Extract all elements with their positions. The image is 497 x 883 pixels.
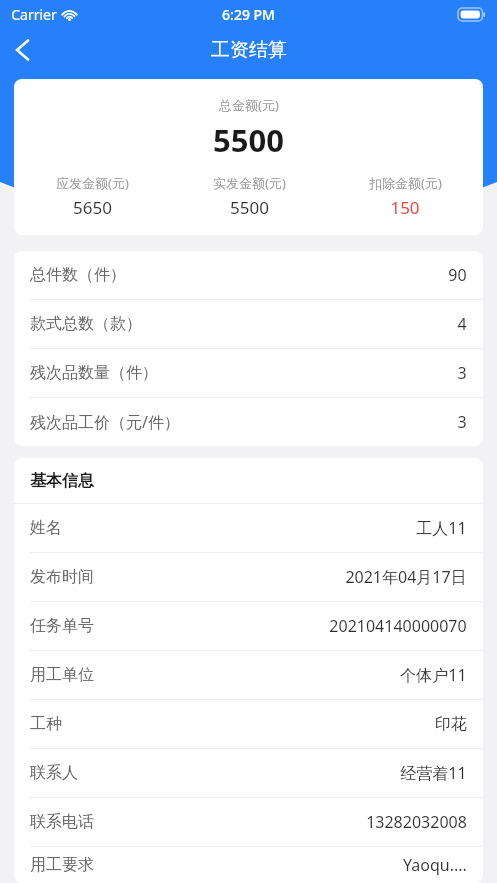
staticText: 用工单位 — [30, 665, 94, 685]
button[interactable]: Back — [0, 28, 46, 72]
staticText: 202104140000070 — [329, 615, 467, 637]
staticText: 实发金额(元) — [213, 174, 286, 192]
staticText: 款式总数（款） — [30, 314, 142, 334]
staticText: 扣除金额(元) — [369, 174, 442, 192]
staticText: 姓名 — [30, 518, 62, 538]
staticText: Yaoqu.... — [403, 854, 467, 876]
staticText: 个体户11 — [400, 664, 467, 686]
staticText: 用工要求 — [30, 855, 94, 875]
button[interactable]: 总件数（件） — [14, 251, 483, 299]
button[interactable]: 残次品数量（件） — [14, 349, 483, 397]
staticText: 工资结算 — [211, 38, 287, 62]
button[interactable]: 联系电话 — [14, 798, 483, 846]
staticText: 任务单号 — [30, 616, 94, 636]
staticText: 3 — [457, 411, 467, 433]
staticText: 3 — [457, 362, 467, 384]
button[interactable]: 联系人 — [14, 749, 483, 797]
staticText: 5500 — [213, 119, 284, 161]
staticText: Carrier — [11, 5, 57, 24]
button[interactable]: 姓名 — [14, 504, 483, 552]
staticText: 印花 — [435, 714, 467, 734]
staticText: 13282032008 — [366, 811, 467, 833]
staticText: 4 — [457, 313, 467, 335]
staticText: 基本信息 — [30, 471, 94, 491]
staticText: 总金额(元) — [219, 96, 279, 114]
staticText: 90 — [448, 264, 467, 286]
button[interactable]: 发布时间 — [14, 553, 483, 601]
button[interactable]: 残次品工价（元/件） — [14, 398, 483, 446]
staticText: 应发金额(元) — [56, 174, 129, 192]
staticText: 工种 — [30, 714, 62, 734]
staticText: 5650 — [73, 196, 112, 219]
button[interactable]: 任务单号 — [14, 602, 483, 650]
staticText: 联系电话 — [30, 812, 94, 832]
button[interactable]: 工种 — [14, 700, 483, 748]
staticText: 联系人 — [30, 763, 78, 783]
staticText: 2021年04月17日 — [345, 566, 467, 588]
button[interactable]: 款式总数（款） — [14, 300, 483, 348]
staticText: 经营着11 — [400, 762, 467, 784]
button[interactable]: 总金额(元) — [14, 79, 483, 235]
staticText: 150 — [390, 196, 420, 219]
staticText: 残次品数量（件） — [30, 363, 158, 383]
staticText: 残次品工价（元/件） — [30, 411, 180, 433]
staticText: 5500 — [230, 196, 269, 219]
button[interactable]: 用工要求 — [14, 847, 483, 883]
button[interactable]: 用工单位 — [14, 651, 483, 699]
staticText: 6:29 PM — [222, 5, 275, 24]
staticText: 发布时间 — [30, 567, 94, 587]
staticText: 总件数（件） — [30, 265, 126, 285]
staticText: 工人11 — [416, 517, 467, 539]
